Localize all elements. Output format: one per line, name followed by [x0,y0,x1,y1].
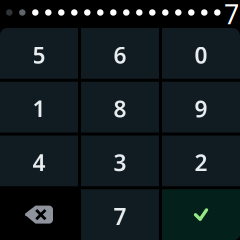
button[interactable]: 7 [81,189,159,240]
staticText: 3 [113,147,126,177]
button[interactable]: Delete [0,189,78,240]
button[interactable]: Confirm [162,189,240,240]
button[interactable]: 1 [0,82,78,133]
staticText: 1 [32,94,45,124]
staticText: 4 [32,147,45,177]
staticText: 0 [194,40,207,70]
button[interactable]: 5 [0,28,78,79]
button[interactable]: 0 [162,28,240,79]
button[interactable]: 2 [162,135,240,186]
staticText: 7 [224,0,239,32]
staticText: 6 [113,40,126,70]
button[interactable]: 9 [162,82,240,133]
button[interactable]: 8 [81,82,159,133]
button[interactable]: 3 [81,135,159,186]
staticText: 8 [113,94,126,124]
staticText: 5 [32,40,45,70]
button[interactable]: 4 [0,135,78,186]
staticText: 9 [194,94,207,124]
button[interactable]: 6 [81,28,159,79]
staticText: 7 [113,201,126,231]
staticText: 2 [194,147,207,177]
